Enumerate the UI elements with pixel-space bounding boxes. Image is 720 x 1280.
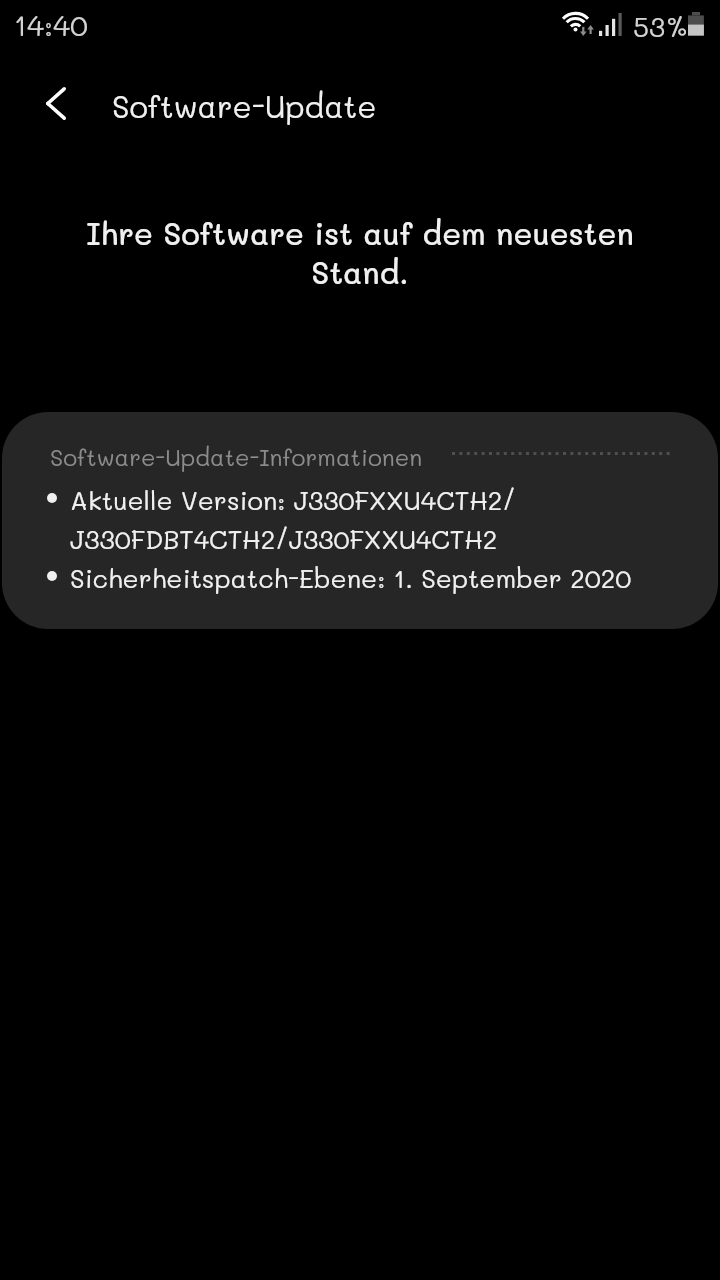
button[interactable]: Software-Update-Informationen xyxy=(2,412,718,629)
staticText: 14:40 xyxy=(14,6,88,44)
staticText: Ihre Software ist auf dem neuesten Stand… xyxy=(72,212,648,292)
button[interactable]: Back xyxy=(18,71,90,133)
staticText: Software-Update xyxy=(112,85,377,125)
staticText: Software-Update-Informationen xyxy=(50,441,423,471)
staticText: 53% xyxy=(633,8,689,44)
staticText: Aktuelle Version: J330FXXU4CTH2/ J330FDB… xyxy=(70,483,632,595)
